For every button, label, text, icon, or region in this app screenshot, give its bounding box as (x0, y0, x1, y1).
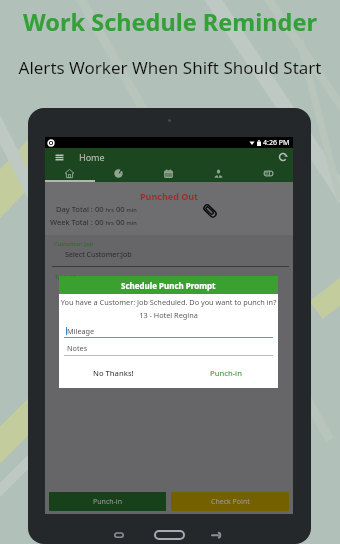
staticText: 00 (116, 204, 125, 214)
button[interactable]: Calendar (143, 166, 193, 182)
button[interactable]: Menu (55, 153, 64, 162)
button[interactable]: Home (154, 530, 185, 540)
button[interactable]: Reports (94, 166, 143, 182)
button[interactable]: Recent apps (114, 530, 124, 540)
button[interactable]: Attachment (201, 202, 219, 220)
staticText: min (125, 206, 137, 214)
button[interactable]: Cards (243, 166, 293, 182)
button[interactable]: Home (45, 166, 94, 182)
staticText: Mileage (67, 326, 95, 336)
staticText: min (125, 219, 137, 227)
staticText: Customer: Job (54, 240, 94, 248)
button[interactable]: Refresh (278, 152, 288, 162)
staticText: Home (79, 151, 105, 163)
staticText: 4:26 PM (263, 138, 290, 148)
staticText: Punch-in (93, 497, 122, 507)
staticText: Punch-in (210, 368, 242, 378)
staticText: Select Customer:Job (65, 249, 132, 259)
button[interactable]: Check Point (171, 492, 289, 511)
staticText: Check Point (211, 497, 250, 507)
staticText: No Thanks! (93, 368, 134, 378)
staticText: hrs (104, 219, 116, 227)
button[interactable]: No Thanks! (74, 364, 152, 382)
staticText: Day Total : (56, 204, 95, 214)
staticText: 00 (116, 217, 125, 227)
button[interactable]: Profile (193, 166, 243, 182)
staticText: Week Total : (50, 217, 95, 227)
staticText: You have a Customer: Job Scheduled. Do y… (59, 297, 278, 307)
button[interactable]: Back (211, 530, 221, 540)
staticText: 00 (95, 204, 104, 214)
staticText: Task / Service (55, 273, 93, 281)
staticText: Notes (67, 343, 88, 353)
staticText: Punched Out (45, 190, 293, 202)
button[interactable]: Notes (64, 342, 273, 354)
staticText: Alerts Worker When Shift Should Start (0, 56, 340, 79)
staticText: 00 (95, 217, 104, 227)
staticText: 13 - Hotel Regina (59, 310, 278, 320)
button[interactable]: Mileage (64, 325, 273, 337)
staticText: Schedule Punch Prompt (121, 280, 216, 291)
button[interactable]: Punch-in (49, 492, 166, 511)
staticText: hrs (104, 206, 116, 214)
button[interactable]: Punch-in (191, 364, 261, 382)
staticText: Work Schedule Reminder (0, 6, 340, 38)
